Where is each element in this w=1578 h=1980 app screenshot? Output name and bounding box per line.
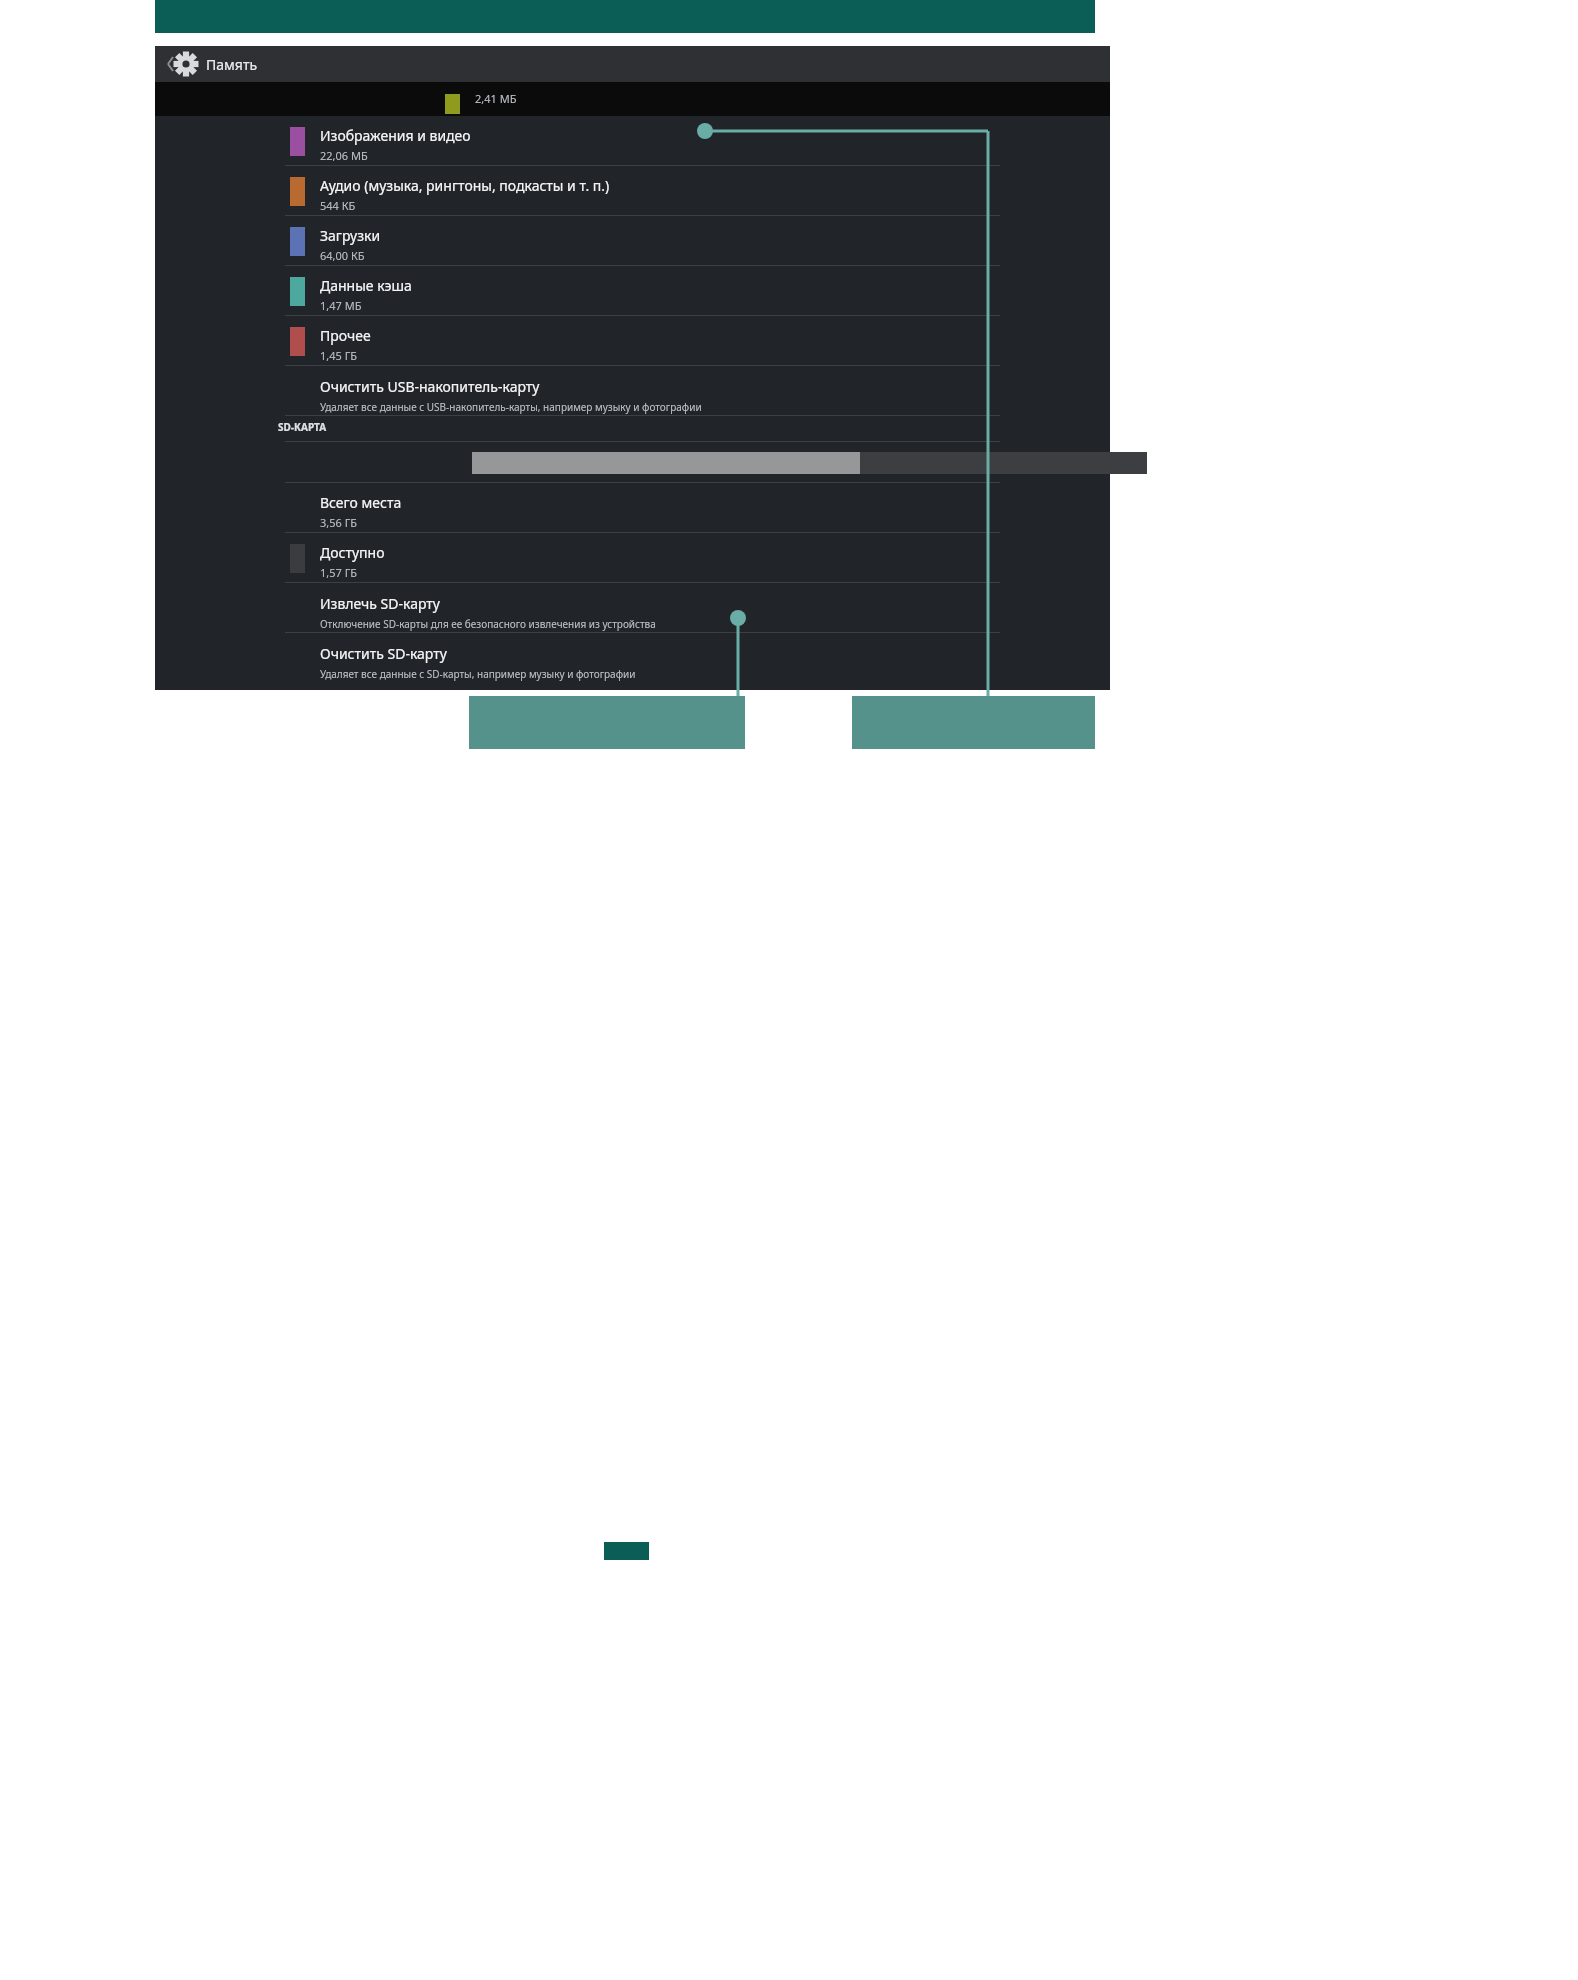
- button[interactable]: Прочее: [155, 316, 1110, 366]
- staticText: Загрузки: [320, 226, 381, 245]
- staticText: Извлечь SD-карту: [320, 594, 440, 613]
- staticText: Память: [206, 55, 258, 74]
- staticText: Удаляет все данные с SD-карты, например …: [320, 667, 636, 681]
- button[interactable]: Загрузки: [155, 216, 1110, 266]
- staticText: 1,47 МБ: [320, 298, 362, 313]
- staticText: Изображения и видео: [320, 126, 471, 145]
- button[interactable]: Back: [160, 46, 206, 82]
- button[interactable]: Очистить SD-карту: [155, 633, 1110, 683]
- button[interactable]: Данные кэша: [155, 266, 1110, 316]
- button[interactable]: Изображения и видео: [155, 116, 1110, 166]
- button[interactable]: Всего места: [155, 483, 1110, 533]
- staticText: 22,06 МБ: [320, 148, 368, 163]
- staticText: Доступно: [320, 543, 385, 562]
- staticText: Очистить SD-карту: [320, 644, 447, 663]
- staticText: Данные кэша: [320, 276, 412, 295]
- staticText: Аудио (музыка, рингтоны, подкасты и т. п…: [320, 176, 610, 195]
- staticText: 3,56 ГБ: [320, 515, 358, 530]
- staticText: Прочее: [320, 326, 371, 345]
- staticText: 1,57 ГБ: [320, 565, 358, 580]
- staticText: 1,45 ГБ: [320, 348, 358, 363]
- staticText: 64,00 КБ: [320, 248, 365, 263]
- button[interactable]: Очистить USB-накопитель-карту: [155, 366, 1110, 416]
- button[interactable]: Доступно: [155, 533, 1110, 583]
- staticText: Всего места: [320, 493, 402, 512]
- staticText: Отключение SD-карты для ее безопасного и…: [320, 617, 656, 631]
- staticText: Очистить USB-накопитель-карту: [320, 377, 540, 396]
- staticText: Удаляет все данные с USB-накопитель-карт…: [320, 400, 702, 414]
- staticText: SD-КАРТА: [278, 420, 327, 434]
- button[interactable]: Аудио (музыка, рингтоны, подкасты и т. п…: [155, 166, 1110, 216]
- staticText: 2,41 МБ: [475, 91, 517, 106]
- button[interactable]: Извлечь SD-карту: [155, 583, 1110, 633]
- staticText: 544 КБ: [320, 198, 356, 213]
